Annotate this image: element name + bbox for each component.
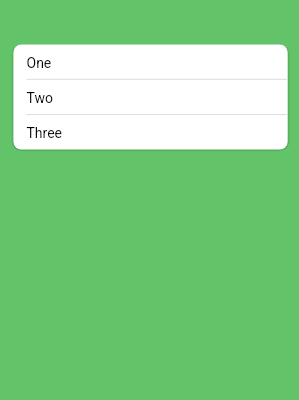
button[interactable]: Two: [13, 79, 287, 114]
button[interactable]: Three: [13, 115, 287, 150]
staticText: Two: [26, 90, 53, 106]
button[interactable]: One: [13, 45, 287, 80]
staticText: Three: [26, 125, 62, 141]
staticText: One: [26, 55, 51, 71]
